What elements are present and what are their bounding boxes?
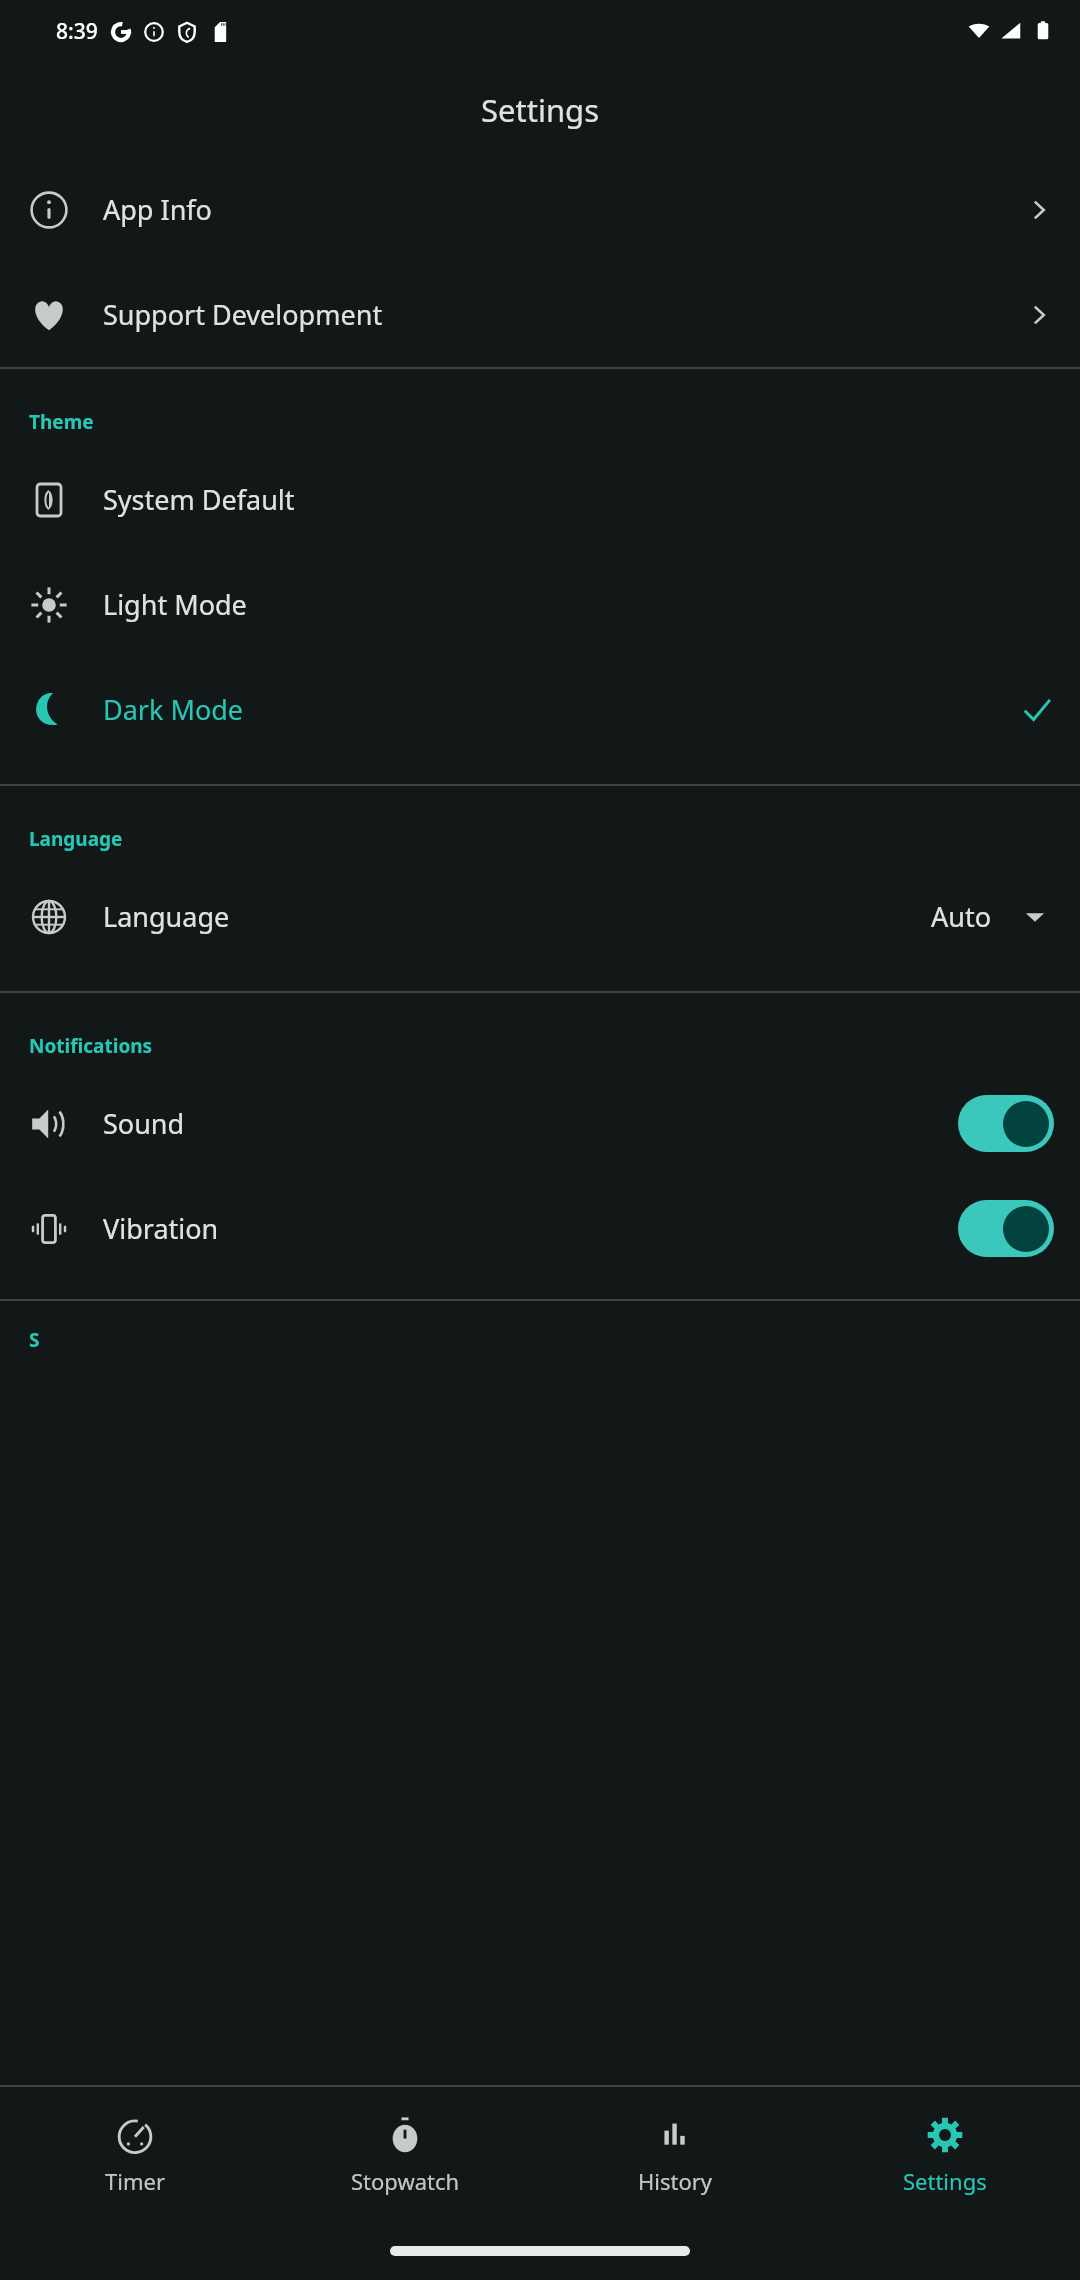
staticText: Notifications (29, 1033, 153, 1059)
button[interactable]: Sound (0, 1071, 1080, 1176)
staticText: System Default (103, 481, 295, 518)
staticText: 8:39 (56, 17, 98, 46)
button[interactable]: Toggle Sound (958, 1095, 1054, 1152)
staticText: Dark Mode (103, 691, 244, 728)
button[interactable]: Language (0, 864, 1080, 969)
button[interactable]: Vibration (0, 1176, 1080, 1281)
staticText: Light Mode (103, 586, 247, 623)
button[interactable]: Dark Mode (0, 657, 1080, 762)
staticText: Theme (29, 409, 94, 435)
staticText: Stopwatch (351, 2166, 460, 2196)
button[interactable]: System Default (0, 447, 1080, 552)
staticText: Support Development (103, 296, 383, 333)
staticText: S (29, 1327, 40, 1353)
staticText: Settings (481, 89, 599, 131)
button[interactable]: App Info (0, 157, 1080, 262)
button[interactable]: Timer (0, 2087, 270, 2222)
staticText: History (638, 2166, 713, 2196)
staticText: Sound (103, 1105, 185, 1142)
staticText: Vibration (103, 1210, 219, 1247)
button[interactable]: History (540, 2087, 810, 2222)
staticText: Auto (931, 898, 992, 935)
button[interactable]: Stopwatch (270, 2087, 540, 2222)
button[interactable]: Light Mode (0, 552, 1080, 657)
button[interactable]: Settings (810, 2087, 1080, 2222)
staticText: Language (29, 826, 123, 852)
staticText: Language (103, 898, 230, 935)
staticText: Settings (903, 2166, 987, 2196)
staticText: Timer (105, 2166, 165, 2196)
button[interactable]: Support Development (0, 262, 1080, 367)
button[interactable]: Toggle Vibration (958, 1200, 1054, 1257)
staticText: App Info (103, 191, 212, 228)
